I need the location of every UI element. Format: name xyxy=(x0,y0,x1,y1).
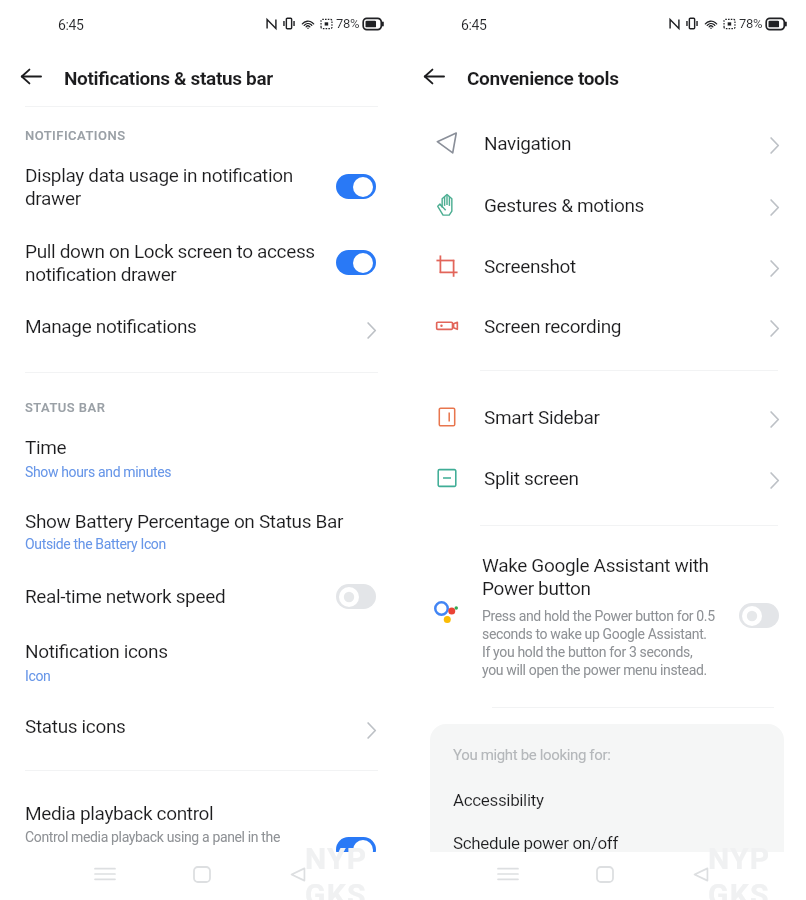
staticText: You might be looking for: xyxy=(453,746,611,764)
staticText: you will open the power menu instead. xyxy=(482,662,707,678)
staticText: Screen recording xyxy=(484,315,622,337)
staticText: Display data usage in notification xyxy=(25,164,293,186)
button[interactable]: Wake Google Assistant with xyxy=(403,550,806,690)
button[interactable]: Accessibility xyxy=(453,790,544,810)
button[interactable]: Home xyxy=(182,857,221,891)
staticText: Manage notifications xyxy=(25,315,197,337)
button[interactable]: Back xyxy=(278,857,317,891)
button[interactable]: Schedule power on/off xyxy=(453,833,618,852)
button[interactable]: Home xyxy=(585,857,624,891)
button[interactable]: Back xyxy=(417,59,451,93)
button[interactable]: Screenshot xyxy=(403,255,806,295)
staticText: Media playback control xyxy=(25,802,214,824)
staticText: Split screen xyxy=(484,467,579,489)
button[interactable]: Turn on xyxy=(336,584,376,609)
staticText: Wake Google Assistant with xyxy=(482,554,709,576)
button[interactable]: Navigation xyxy=(403,132,806,172)
staticText: Control media playback using a panel in … xyxy=(25,829,281,845)
button[interactable]: Recents xyxy=(488,857,527,891)
staticText: GKS xyxy=(305,877,367,900)
staticText: 78% xyxy=(739,16,763,31)
staticText: Show Battery Percentage on Status Bar xyxy=(25,510,344,532)
staticText: Time xyxy=(25,436,67,458)
staticText: Notification icons xyxy=(25,640,168,662)
button[interactable]: Recents xyxy=(85,857,124,891)
button[interactable]: Gestures & motions xyxy=(403,194,806,234)
staticText: 6:45 xyxy=(461,17,487,33)
staticText: Notifications & status bar xyxy=(64,67,273,89)
staticText: NYP xyxy=(305,841,368,876)
staticText: seconds to wake up Google Assistant. xyxy=(482,626,707,642)
staticText: Pull down on Lock screen to access xyxy=(25,240,315,262)
staticText: 78% xyxy=(336,16,360,31)
staticText: If you hold the button for 3 seconds, xyxy=(482,644,693,660)
staticText: Gestures & motions xyxy=(484,194,645,216)
staticText: Icon xyxy=(25,668,51,684)
button[interactable]: Pull down on Lock screen to access xyxy=(0,240,403,296)
staticText: Status icons xyxy=(25,715,126,737)
button[interactable]: Back xyxy=(681,857,720,891)
staticText: Press and hold the Power button for 0.5 xyxy=(482,608,715,624)
button[interactable]: Turn off xyxy=(336,174,376,199)
staticText: Show hours and minutes xyxy=(25,464,172,480)
staticText: STATUS BAR xyxy=(25,400,106,415)
button[interactable]: Turn off xyxy=(336,837,376,852)
button[interactable]: Turn on xyxy=(739,603,779,628)
staticText: NOTIFICATIONS xyxy=(25,128,126,143)
staticText: notification drawer xyxy=(25,263,177,285)
staticText: drawer xyxy=(25,187,81,209)
staticText: Navigation xyxy=(484,132,572,154)
button[interactable]: Display data usage in notification xyxy=(0,164,403,220)
staticText: NYP xyxy=(708,841,771,876)
button[interactable]: Screen recording xyxy=(403,315,806,355)
staticText: Real-time network speed xyxy=(25,585,226,607)
button[interactable]: Smart Sidebar xyxy=(403,406,806,446)
staticText: Convenience tools xyxy=(467,67,619,89)
staticText: Smart Sidebar xyxy=(484,406,600,428)
button[interactable]: Split screen xyxy=(403,467,806,507)
staticText: Power button xyxy=(482,577,591,599)
staticText: 6:45 xyxy=(58,17,84,33)
button[interactable]: Back xyxy=(14,59,48,93)
staticText: Screenshot xyxy=(484,255,576,277)
staticText: Outside the Battery Icon xyxy=(25,536,166,552)
staticText: GKS xyxy=(708,877,770,900)
button[interactable]: Turn off xyxy=(336,250,376,275)
